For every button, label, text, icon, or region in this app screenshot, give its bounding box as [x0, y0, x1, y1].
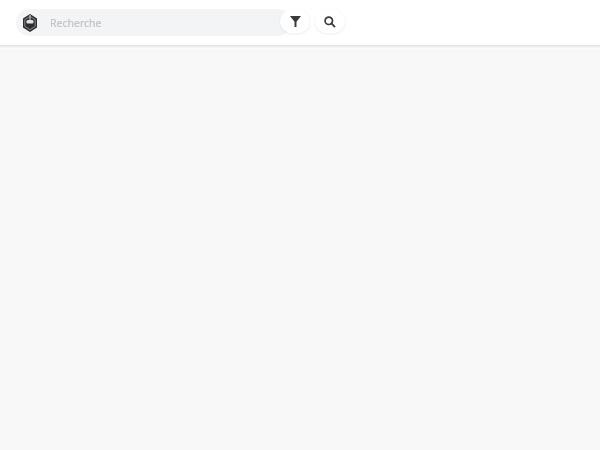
button[interactable]: Search: [315, 10, 345, 33]
button[interactable]: Recherche: [16, 9, 291, 36]
button[interactable]: Filter: [280, 10, 310, 33]
staticText: Recherche: [50, 16, 102, 30]
